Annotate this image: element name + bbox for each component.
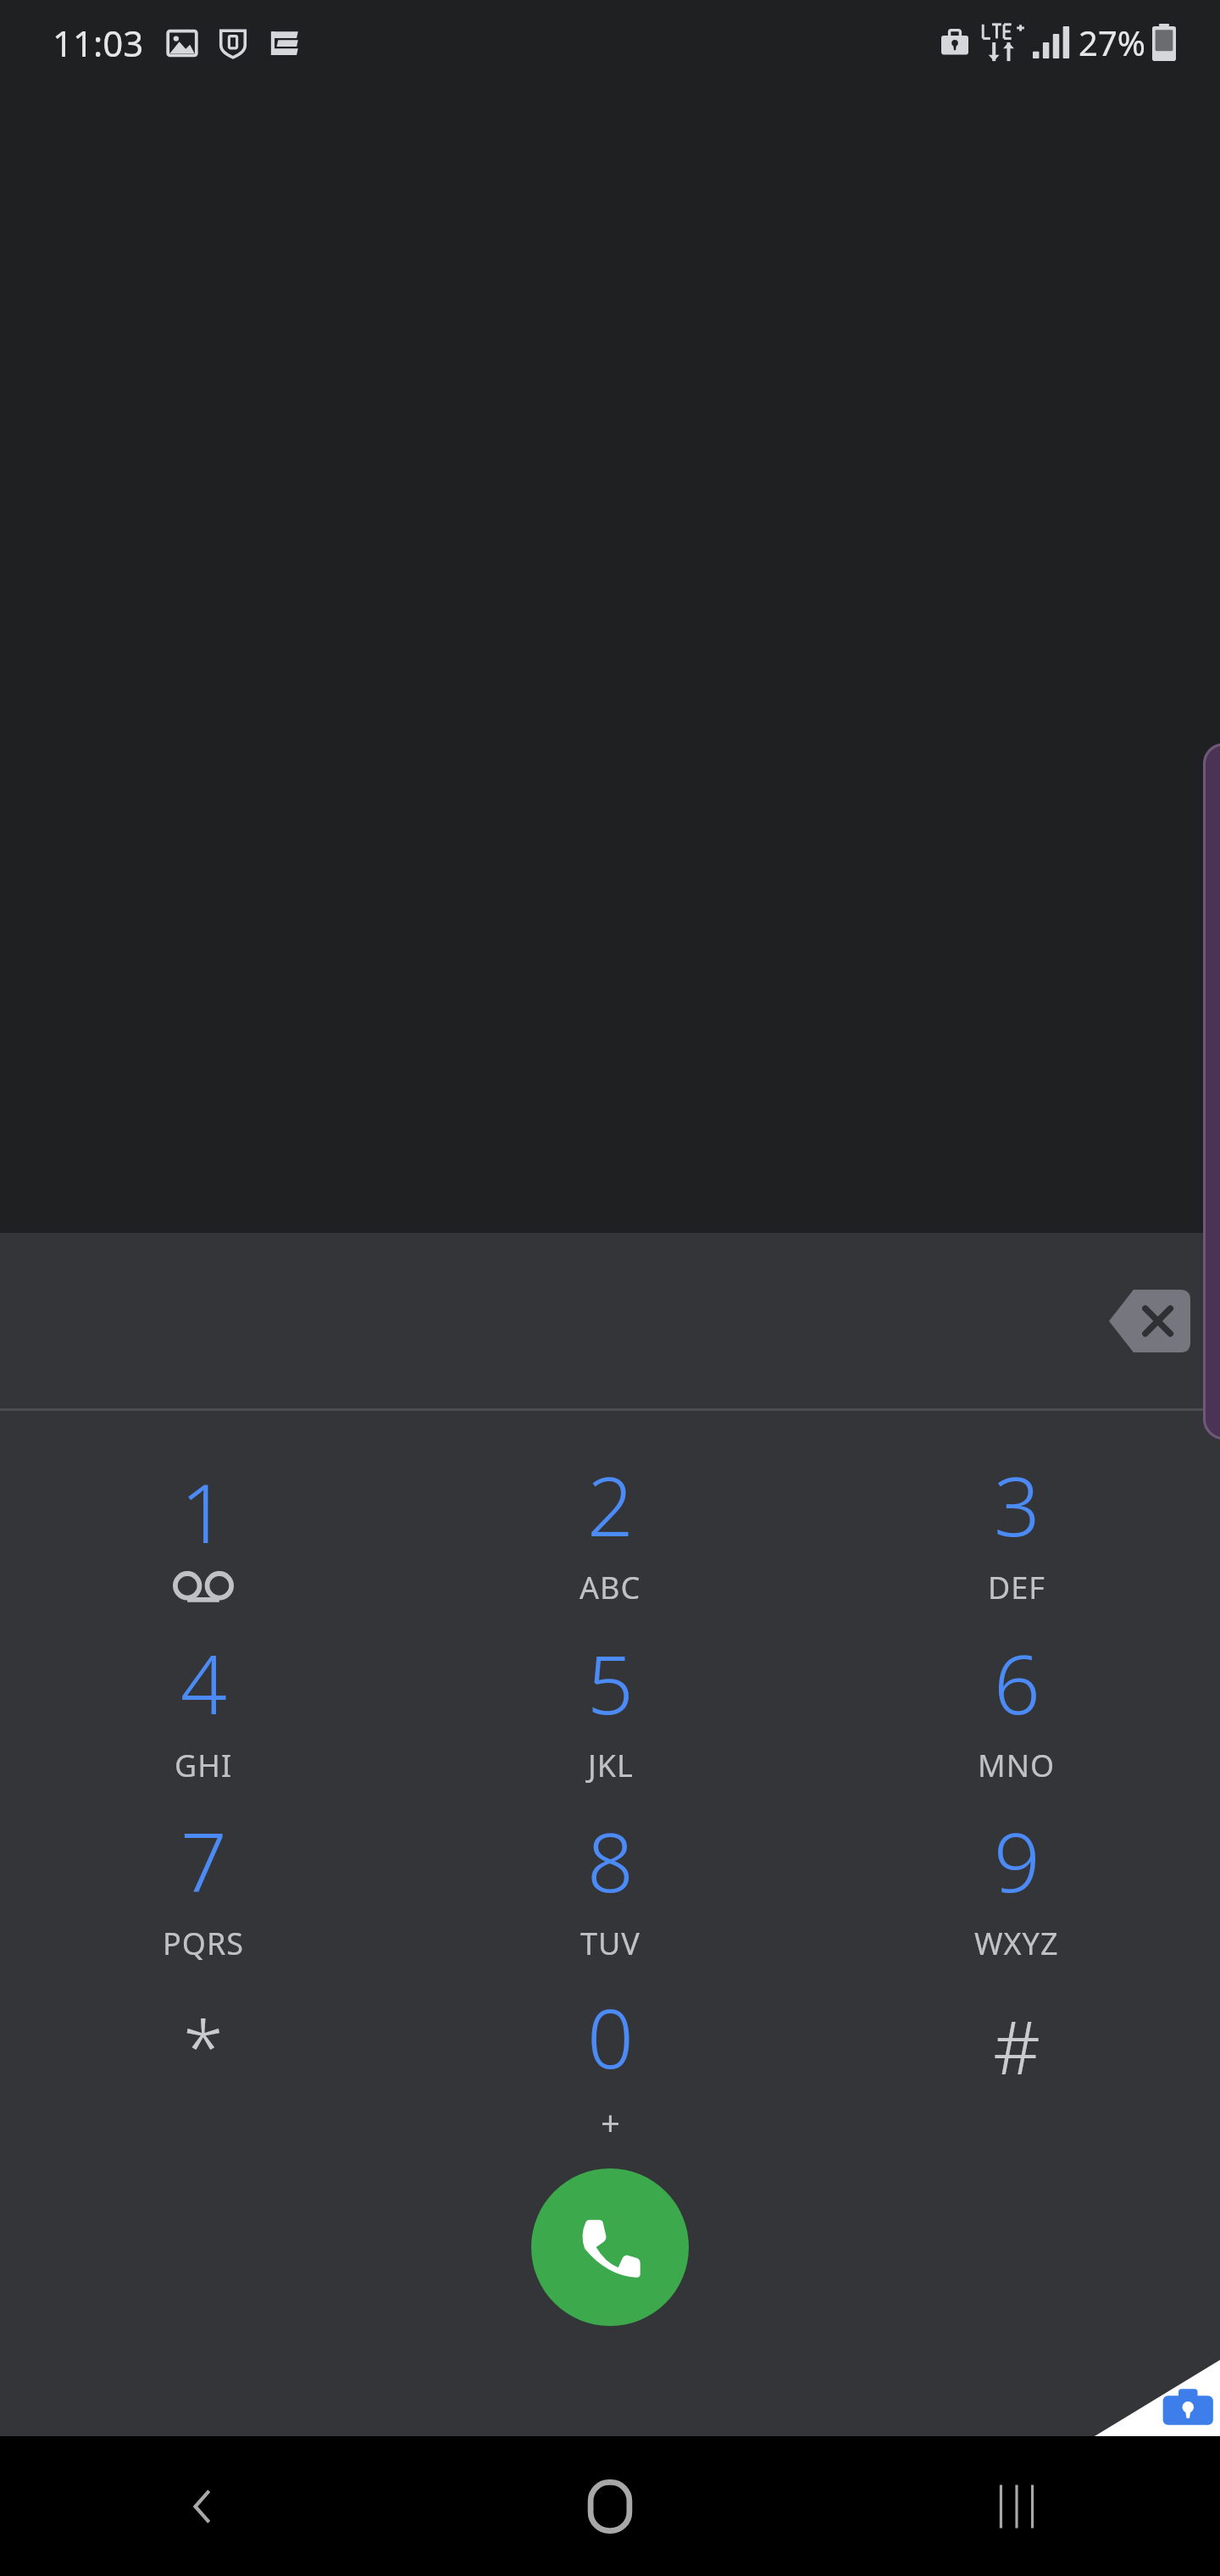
staticText: WXYZ [974,1923,1059,1964]
staticText: 1 [180,1456,227,1567]
staticText: MNO [978,1745,1056,1786]
button[interactable]: 3 [813,1433,1220,1611]
staticText: 7 [180,1805,227,1916]
staticText: 9 [994,1805,1040,1916]
button[interactable]: 4 [0,1611,407,1789]
staticText: DEF [988,1567,1045,1608]
staticText: 4 [180,1627,227,1738]
staticText: JKL [588,1745,634,1786]
button[interactable]: 5 [407,1611,813,1789]
staticText: 0 [587,1981,634,2092]
staticText: PQRS [163,1923,245,1964]
button[interactable]: 6 [813,1611,1220,1789]
staticText: 2 [587,1449,634,1560]
staticText: # [993,1996,1040,2096]
button[interactable]: 7 [0,1789,407,1967]
staticText: * [183,1996,224,2096]
button[interactable]: Back [0,2436,407,2576]
staticText: 3 [994,1449,1040,1560]
staticText: TUV [580,1923,640,1964]
button[interactable]: # [813,1967,1220,2145]
staticText: GHI [175,1745,233,1786]
button[interactable]: Call [531,2168,689,2326]
button[interactable]: Recent apps [813,2436,1220,2576]
staticText: ABC [579,1567,641,1608]
staticText: 6 [994,1627,1040,1738]
staticText: 27% [1079,19,1145,65]
staticText: + [601,2099,621,2145]
button[interactable]: Edge panel handle [1203,743,1220,1440]
button[interactable]: 2 [407,1433,813,1611]
button[interactable]: * [0,1967,407,2145]
staticText: 5 [587,1627,634,1738]
button[interactable]: 1 [0,1433,407,1611]
button[interactable]: 9 [813,1789,1220,1967]
staticText: 11:03 [53,19,144,67]
staticText: 8 [587,1805,634,1916]
button[interactable]: Home [407,2436,813,2576]
button[interactable]: 8 [407,1789,813,1967]
button[interactable]: Backspace [1103,1280,1196,1362]
button[interactable]: 0 [407,1967,813,2145]
